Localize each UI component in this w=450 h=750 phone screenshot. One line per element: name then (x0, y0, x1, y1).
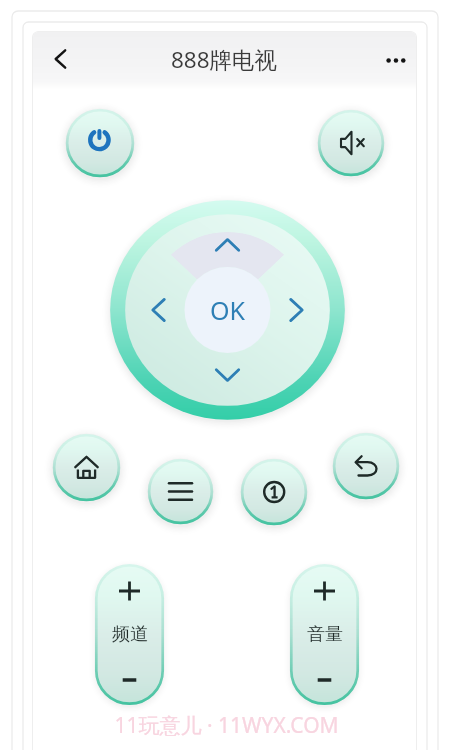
staticText: 11玩意儿 · 11WYX.COM (114, 711, 339, 740)
button[interactable]: 音量 (280, 554, 369, 715)
button[interactable]: More options (376, 41, 416, 81)
button[interactable]: OK (185, 267, 271, 353)
button[interactable]: Home (43, 424, 130, 511)
button[interactable]: Channel one (231, 449, 317, 535)
button[interactable]: Back (323, 423, 409, 509)
button[interactable]: Back (39, 41, 79, 81)
button[interactable]: Mute (308, 100, 394, 186)
button[interactable]: 频道 (85, 554, 174, 715)
staticText: OK (210, 293, 246, 327)
staticText: 音量 (307, 623, 343, 646)
button[interactable]: Power (56, 99, 144, 187)
staticText: 频道 (112, 623, 148, 646)
button[interactable]: Menu (138, 449, 223, 534)
staticText: 888牌电视 (171, 44, 278, 75)
